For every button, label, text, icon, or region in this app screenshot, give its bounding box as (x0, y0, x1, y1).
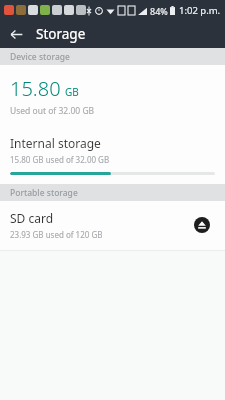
staticText: Storage (36, 25, 86, 43)
staticText: 15.80 (10, 75, 61, 102)
staticText: Device storage (10, 51, 70, 63)
staticText: GB (65, 85, 79, 99)
button[interactable]: Back (4, 22, 28, 46)
staticText: Internal storage (10, 135, 101, 151)
button[interactable]: SD card (0, 201, 225, 250)
button[interactable]: Internal storage (0, 127, 225, 184)
staticText: 15.80 GB used of 32.00 GB (10, 154, 110, 165)
staticText: Portable storage (10, 187, 78, 199)
button[interactable]: Eject SD card (189, 212, 215, 238)
staticText: 1:02 p.m. (179, 4, 221, 17)
staticText: SD card (10, 210, 54, 226)
staticText: 84% (150, 5, 168, 17)
staticText: 23.93 GB used of 120 GB (10, 229, 103, 240)
staticText: Used out of 32.00 GB (10, 105, 95, 117)
